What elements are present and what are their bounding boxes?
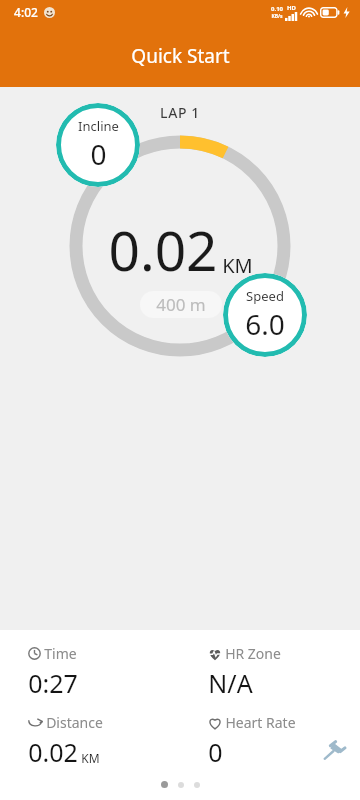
staticText: Distance bbox=[46, 713, 103, 732]
staticText: HD bbox=[287, 4, 296, 12]
staticText: Quick Start bbox=[131, 43, 230, 69]
staticText: 0:27 bbox=[28, 666, 78, 700]
button[interactable]: Distance bbox=[0, 713, 180, 769]
button[interactable]: HR Zone bbox=[180, 644, 360, 700]
button[interactable]: Incline bbox=[56, 103, 140, 187]
staticText: Incline bbox=[78, 117, 119, 135]
staticText: 4:02 bbox=[14, 4, 38, 20]
staticText: Speed bbox=[246, 287, 284, 305]
staticText: 400 m bbox=[156, 293, 206, 316]
staticText: KM bbox=[222, 252, 253, 279]
staticText: 0.10 bbox=[271, 5, 283, 13]
staticText: N/A bbox=[208, 666, 253, 700]
button[interactable]: Speed bbox=[223, 273, 307, 357]
staticText: LAP 1 bbox=[160, 103, 200, 122]
button[interactable]: Pin bbox=[316, 734, 350, 768]
staticText: 6.0 bbox=[245, 305, 285, 343]
staticText: HR Zone bbox=[225, 644, 281, 663]
staticText: KB/s bbox=[271, 13, 283, 20]
staticText: KM bbox=[81, 750, 100, 766]
staticText: Heart Rate bbox=[225, 713, 296, 732]
staticText: 0 bbox=[208, 735, 223, 769]
staticText: 0.02 bbox=[108, 212, 218, 287]
button[interactable]: Heart Rate bbox=[180, 713, 360, 769]
button[interactable]: Time bbox=[0, 644, 180, 700]
button[interactable]: 400 m bbox=[140, 291, 222, 318]
staticText: 0 bbox=[90, 135, 107, 173]
staticText: Time bbox=[44, 644, 77, 663]
staticText: 0.02 bbox=[28, 735, 78, 769]
